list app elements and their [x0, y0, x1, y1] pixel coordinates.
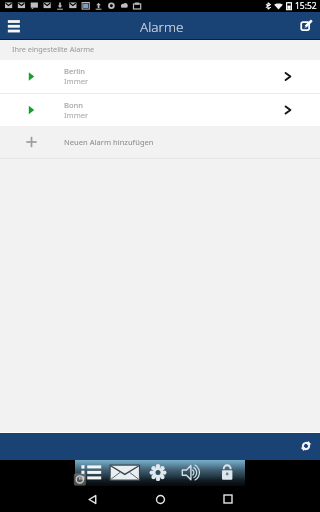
- staticText: Bonn: [64, 100, 83, 110]
- button[interactable]: Mail: [109, 460, 143, 486]
- button[interactable]: Volume: [177, 460, 211, 486]
- staticText: Immer: [64, 76, 89, 86]
- staticText: Ihre eingestellte Alarme: [12, 44, 95, 54]
- staticText: Berlin: [64, 66, 85, 76]
- button[interactable]: Bonn: [0, 94, 320, 126]
- button[interactable]: Menu: [0, 12, 28, 39]
- button[interactable]: Berlin: [0, 60, 320, 93]
- button[interactable]: Back: [80, 487, 104, 511]
- button[interactable]: Refresh: [296, 436, 316, 456]
- button[interactable]: Recents: [216, 487, 240, 511]
- staticText: Immer: [64, 110, 89, 120]
- button[interactable]: Home: [148, 487, 172, 511]
- button[interactable]: Settings: [143, 460, 177, 486]
- button[interactable]: Neuen Alarm hinzufügen: [0, 126, 320, 158]
- button[interactable]: Edit: [292, 12, 320, 39]
- staticText: Neuen Alarm hinzufügen: [64, 137, 154, 147]
- staticText: Alarme: [140, 18, 184, 36]
- staticText: 15:52: [295, 0, 317, 12]
- button[interactable]: Lock: [211, 460, 245, 486]
- button[interactable]: Lists: [75, 460, 109, 486]
